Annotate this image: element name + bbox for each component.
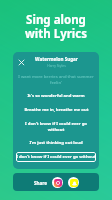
staticText: I don't know if I could ever go without bbox=[17, 121, 95, 132]
button[interactable]: I don't know if I could ever go without bbox=[17, 121, 95, 132]
staticText: Watermelon Sugar bbox=[35, 56, 78, 62]
staticText: Breathe me in, breathe me out bbox=[24, 107, 89, 113]
staticText: I don't know if I could ever go without bbox=[16, 154, 96, 160]
staticText: I'm just thinking out loud bbox=[29, 140, 83, 146]
button[interactable]: I want more berries and that summer feel… bbox=[17, 74, 95, 85]
button[interactable]: It's so wonderful and warm bbox=[17, 93, 95, 99]
button[interactable]: I don't know if I could ever go without bbox=[16, 154, 96, 160]
staticText: It's so wonderful and warm bbox=[27, 93, 85, 99]
button[interactable]: Share bbox=[34, 180, 47, 186]
button[interactable]: Breathe me in, breathe me out bbox=[17, 107, 95, 113]
button[interactable]: Share to Instagram bbox=[52, 177, 63, 188]
button[interactable]: I'm just thinking out loud bbox=[17, 140, 95, 146]
button[interactable]: Close bbox=[16, 57, 26, 67]
staticText: Sing along with Lyrics bbox=[0, 12, 112, 41]
staticText: Harry Styles bbox=[47, 63, 66, 67]
button[interactable]: Share to Snapchat bbox=[68, 177, 79, 188]
staticText: I want more berries and that summer feel… bbox=[17, 74, 95, 85]
